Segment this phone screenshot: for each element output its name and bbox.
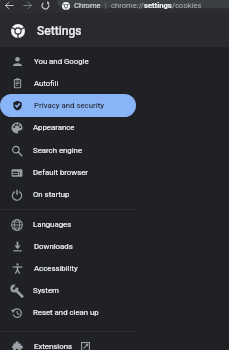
staticText: Languages [33, 220, 72, 229]
button[interactable]: Appearance [0, 116, 136, 139]
staticText: chrome:// [111, 1, 144, 10]
staticText: Search engine [33, 146, 83, 155]
staticText: /cookies [172, 1, 202, 10]
staticText: On startup [33, 190, 70, 199]
button[interactable]: Privacy and security [0, 94, 136, 117]
staticText: You and Google [34, 57, 89, 66]
button[interactable]: Default browser [0, 161, 136, 184]
button[interactable]: Downloads [0, 235, 136, 258]
button[interactable]: Autofill [0, 72, 136, 95]
button[interactable] [57, 0, 229, 8]
staticText: Accessibility [34, 264, 78, 273]
button[interactable]: Reload [40, 0, 51, 11]
button[interactable]: Extensions [0, 335, 136, 350]
staticText: Extensions [34, 342, 72, 350]
staticText: Appearance [33, 123, 75, 132]
staticText: Reset and clean up [33, 308, 99, 317]
staticText: Settings [37, 24, 82, 38]
button[interactable]: Languages [0, 213, 136, 236]
staticText: Autofill [34, 79, 59, 88]
staticText: Privacy and security [34, 101, 105, 110]
button[interactable]: On startup [0, 183, 136, 206]
button[interactable]: System [0, 279, 136, 302]
staticText: Downloads [34, 242, 73, 251]
button[interactable]: Back [4, 0, 15, 11]
button[interactable]: You and Google [0, 50, 136, 73]
staticText: settings [144, 1, 172, 10]
staticText: Chrome [74, 1, 101, 10]
button[interactable]: Reset and clean up [0, 301, 136, 324]
staticText: System [33, 286, 59, 295]
staticText: Default browser [33, 168, 88, 177]
button[interactable]: Forward [22, 0, 33, 11]
button[interactable]: Accessibility [0, 257, 136, 280]
button[interactable]: Search engine [0, 139, 136, 162]
